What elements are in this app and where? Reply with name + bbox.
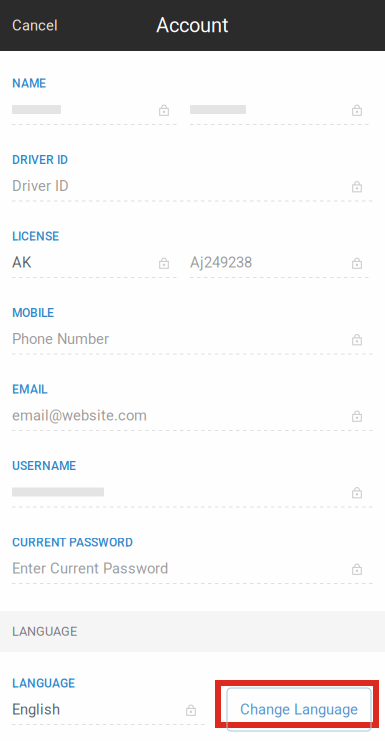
staticText: NAME (12, 76, 46, 91)
staticText: Account (156, 14, 229, 37)
staticText: email@website.com (12, 407, 147, 424)
staticText: Phone Number (12, 330, 109, 348)
staticText: Change Language (240, 701, 358, 718)
staticText: USERNAME (12, 459, 76, 473)
staticText: Aj249238 (190, 254, 252, 271)
staticText: LICENSE (12, 229, 59, 244)
staticText: EMAIL (12, 382, 47, 397)
staticText: English (12, 701, 60, 718)
button[interactable]: Cancel (0, 0, 58, 51)
staticText: LANGUAGE (12, 676, 75, 691)
staticText: Cancel (12, 17, 58, 34)
staticText: Enter Current Password (12, 560, 168, 577)
staticText: CURRENT PASSWORD (12, 535, 133, 550)
staticText: AK (12, 254, 31, 271)
staticText: MOBILE (12, 306, 54, 320)
staticText: DRIVER ID (12, 153, 68, 167)
button[interactable]: Change Language (227, 688, 371, 731)
staticText: LANGUAGE (12, 624, 77, 639)
staticText: Driver ID (12, 177, 69, 195)
